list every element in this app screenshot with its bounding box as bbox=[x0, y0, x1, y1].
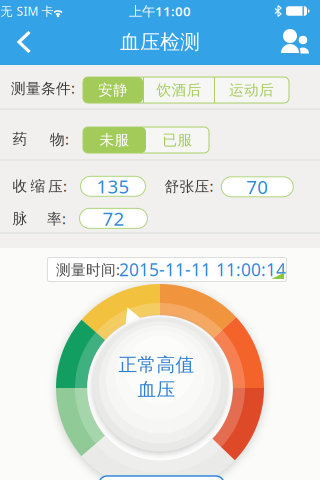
staticText: 安静 bbox=[98, 81, 128, 99]
button[interactable] bbox=[280, 27, 312, 55]
staticText: 压: bbox=[48, 176, 67, 196]
staticText: 药 bbox=[12, 130, 27, 148]
staticText: 脉 bbox=[12, 209, 27, 227]
button[interactable]: 安静 bbox=[83, 77, 143, 103]
staticText: 物: bbox=[50, 129, 69, 149]
button[interactable]: 运动后 bbox=[215, 77, 288, 103]
staticText: 饮酒后 bbox=[156, 81, 201, 99]
staticText: 测量条件: bbox=[11, 78, 75, 98]
staticText: 无 SIM 卡 bbox=[0, 3, 53, 19]
button[interactable]: 测量时间: bbox=[47, 257, 286, 281]
staticText: 运动后 bbox=[229, 81, 274, 99]
button[interactable]: 已服 bbox=[146, 127, 208, 153]
staticText: 缩 bbox=[30, 177, 45, 195]
staticText: 上午11:00 bbox=[129, 2, 191, 20]
staticText: 血压检测 bbox=[120, 30, 200, 54]
staticText: 135 bbox=[96, 174, 129, 199]
staticText: 72 bbox=[102, 206, 124, 231]
staticText: 收 bbox=[12, 177, 27, 195]
button[interactable] bbox=[15, 28, 39, 56]
button[interactable]: 135 bbox=[80, 176, 145, 196]
staticText: 未服 bbox=[99, 131, 129, 149]
staticText: 血压 bbox=[137, 378, 175, 401]
button[interactable]: 72 bbox=[79, 208, 147, 228]
staticText: 率: bbox=[47, 209, 66, 228]
staticText: 正常高值 bbox=[118, 353, 194, 376]
button[interactable]: 70 bbox=[221, 177, 293, 197]
button[interactable] bbox=[99, 476, 224, 480]
button[interactable]: 未服 bbox=[83, 127, 146, 153]
staticText: 舒张压: bbox=[164, 176, 213, 196]
staticText: 70 bbox=[246, 174, 268, 199]
staticText: 测量时间: bbox=[56, 260, 120, 279]
staticText: 2015-11-11 11:00:14 bbox=[119, 258, 286, 281]
button[interactable]: 饮酒后 bbox=[144, 77, 214, 103]
staticText: 已服 bbox=[162, 131, 192, 149]
